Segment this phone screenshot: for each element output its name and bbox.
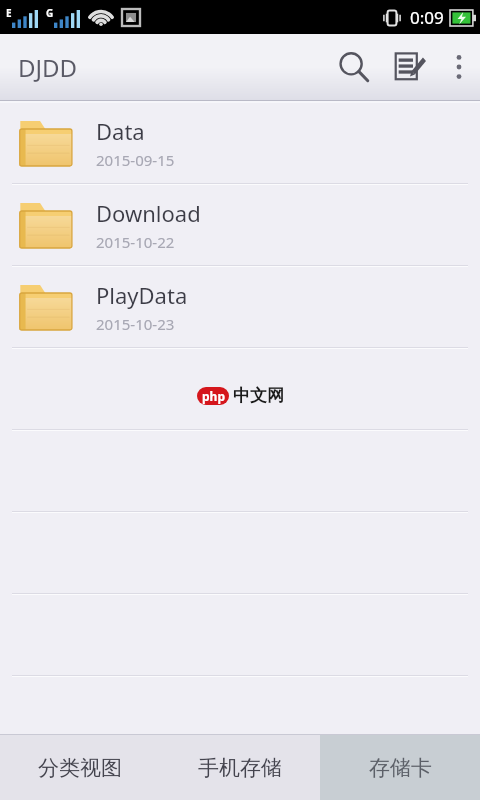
button[interactable]: 存储卡 — [320, 735, 480, 800]
staticText: 2015-10-23 — [96, 314, 175, 334]
button[interactable]: Data — [0, 103, 480, 183]
button[interactable]: Edit — [382, 36, 438, 98]
button[interactable]: 分类视图 — [0, 735, 160, 800]
button[interactable]: Download — [0, 185, 480, 265]
staticText: php — [202, 388, 225, 404]
staticText: 分类视图 — [38, 755, 122, 781]
staticText: Download — [96, 198, 201, 228]
button[interactable]: 手机存储 — [160, 735, 320, 800]
staticText: 存储卡 — [369, 755, 432, 781]
button[interactable]: Search — [326, 36, 382, 98]
staticText: DJDD — [18, 51, 78, 84]
button[interactable]: PlayData — [0, 267, 480, 347]
staticText: 2015-09-15 — [96, 150, 175, 170]
button[interactable]: More options — [438, 36, 480, 98]
staticText: 手机存储 — [198, 755, 282, 781]
staticText: Data — [96, 116, 145, 146]
staticText: 中文网 — [233, 385, 284, 406]
staticText: PlayData — [96, 280, 188, 310]
staticText: G — [46, 6, 54, 20]
staticText: 0:09 — [410, 6, 444, 29]
staticText: 2015-10-22 — [96, 232, 175, 252]
staticText: E — [6, 6, 12, 20]
